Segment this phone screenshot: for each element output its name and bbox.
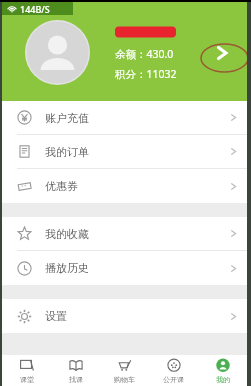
button[interactable]: 余额：430.0 <box>2 15 247 101</box>
button[interactable]: 我的 <box>198 355 247 386</box>
staticText: 找课 <box>69 375 83 384</box>
button[interactable]: 账户充值 <box>2 101 247 135</box>
staticText: 积分：11032 <box>115 67 177 81</box>
button[interactable]: 找课 <box>51 355 100 386</box>
staticText: 144B/S <box>20 3 50 15</box>
staticText: 设置 <box>45 309 67 323</box>
staticText: 我的 <box>216 375 230 384</box>
button[interactable]: 公开课 <box>149 355 198 386</box>
staticText: 购物车 <box>114 375 135 384</box>
staticText: 播放历史 <box>45 261 89 275</box>
button[interactable]: 设置 <box>2 299 247 333</box>
button[interactable]: 我的订单 <box>2 135 247 169</box>
button[interactable]: 我的收藏 <box>2 217 247 251</box>
button[interactable]: 优惠券 <box>2 169 247 203</box>
staticText: 账户充值 <box>45 111 89 125</box>
button[interactable]: 课堂 <box>2 355 51 386</box>
staticText: 我的订单 <box>45 145 89 159</box>
staticText: 余额：430.0 <box>115 47 174 61</box>
staticText: 课堂 <box>20 375 34 384</box>
staticText: 我的收藏 <box>45 227 89 241</box>
button[interactable]: 购物车 <box>100 355 149 386</box>
staticText: 公开课 <box>163 375 184 384</box>
staticText: 优惠券 <box>45 179 78 193</box>
button[interactable]: 播放历史 <box>2 251 247 285</box>
